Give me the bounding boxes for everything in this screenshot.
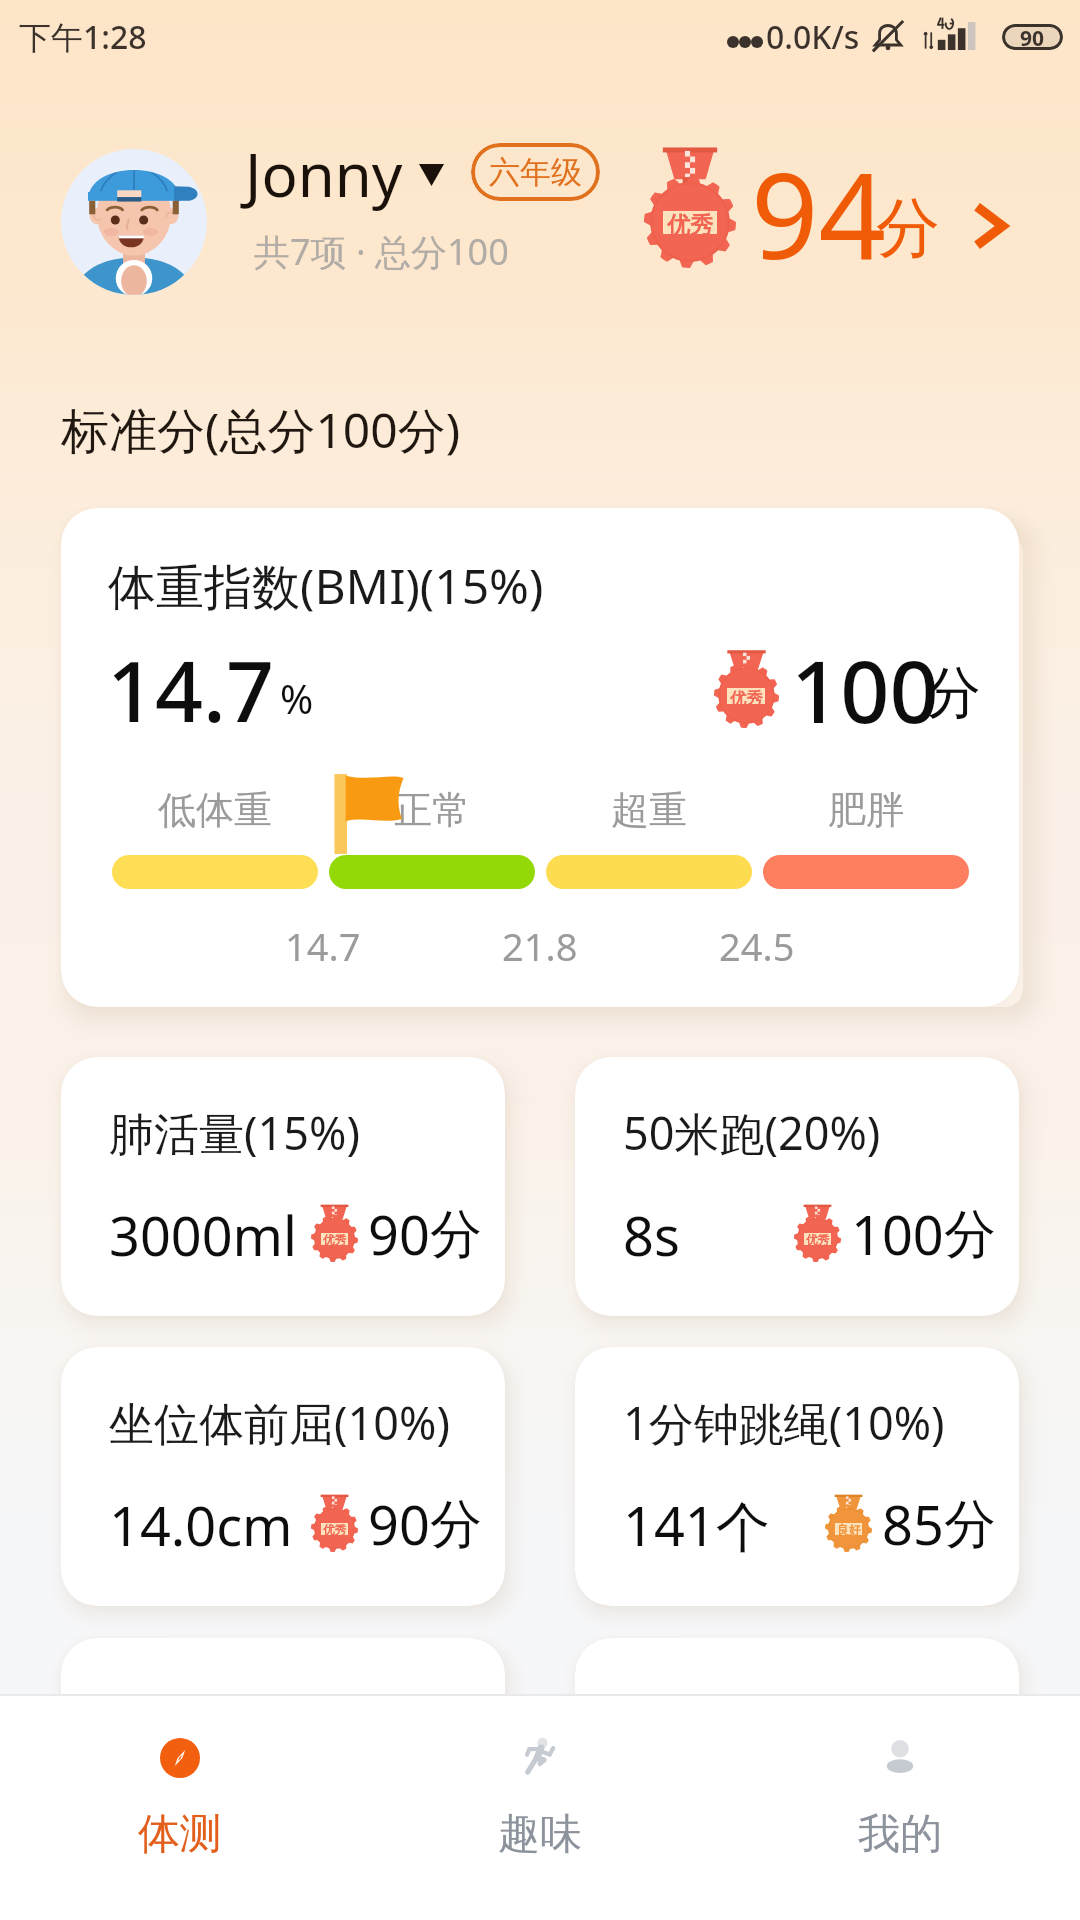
staticText: 分 xyxy=(944,1492,996,1558)
button[interactable]: 体测 xyxy=(0,1696,360,1920)
staticText: 50米跑(20%) xyxy=(623,1102,881,1163)
staticText: 良好 xyxy=(837,1523,861,1535)
button[interactable]: 体重指数(BMI)(15%) xyxy=(61,508,1019,1007)
staticText: 肥胖 xyxy=(828,786,904,834)
button[interactable]: 我的 xyxy=(720,1696,1080,1920)
staticText: 分 xyxy=(430,1202,482,1268)
staticText: Jonny xyxy=(245,133,403,215)
button[interactable]: 六年级 xyxy=(471,143,600,201)
staticText: 正常 xyxy=(394,786,470,834)
staticText: 14.7 xyxy=(285,920,361,972)
button[interactable]: 趣味 xyxy=(360,1696,720,1920)
staticText: 体测 xyxy=(138,1808,222,1861)
staticText: 标准分(总分100分) xyxy=(61,397,461,463)
staticText: 优秀 xyxy=(806,1233,830,1245)
staticText: 1分钟跳绳(10%) xyxy=(623,1392,945,1453)
staticText: 优秀 xyxy=(323,1523,347,1535)
staticText: 低体重 xyxy=(158,786,272,834)
button[interactable]: 总分 94 分 查看详情 xyxy=(630,130,1020,270)
staticText: 分 xyxy=(944,1202,996,1268)
staticText: 90 xyxy=(368,1487,430,1561)
staticText: % xyxy=(280,671,314,725)
staticText: 14.0cm xyxy=(109,1488,293,1562)
staticText: 8s xyxy=(623,1198,680,1272)
staticText: 0.0K/s xyxy=(766,15,860,59)
staticText: 优秀 xyxy=(730,688,763,704)
staticText: 85 xyxy=(882,1487,944,1561)
button[interactable]: 1分钟跳绳(10%) xyxy=(575,1347,1019,1606)
staticText: 90 xyxy=(1020,24,1045,50)
staticText: 94 xyxy=(751,133,886,273)
staticText: 3000ml xyxy=(109,1198,297,1272)
staticText: 共7项 · 总分100 xyxy=(254,227,509,276)
staticText: 141个 xyxy=(623,1488,770,1562)
staticText: 体重指数(BMI)(15%) xyxy=(108,553,544,619)
staticText: 趣味 xyxy=(498,1808,582,1861)
staticText: 14.7 xyxy=(107,632,274,746)
staticText: 21.8 xyxy=(502,920,578,972)
staticText: 坐位体前屈(10%) xyxy=(109,1392,450,1453)
button[interactable]: 50米跑(20%) xyxy=(575,1057,1019,1316)
staticText: 分 xyxy=(430,1492,482,1558)
staticText: 90 xyxy=(368,1197,430,1271)
staticText: 24.5 xyxy=(719,920,795,972)
button[interactable]: 用户头像 xyxy=(61,149,207,295)
button[interactable]: Jonny xyxy=(245,133,444,215)
button[interactable]: 肺活量(15%) xyxy=(61,1057,505,1316)
staticText: 超重 xyxy=(611,786,687,834)
staticText: 优秀 xyxy=(323,1233,347,1245)
staticText: 六年级 xyxy=(489,153,582,192)
staticText: 下午1:28 xyxy=(19,15,147,59)
staticText: 肺活量(15%) xyxy=(109,1102,360,1163)
staticText: 100 xyxy=(851,1197,944,1271)
staticText: 优秀 xyxy=(667,211,713,234)
staticText: 分 xyxy=(925,658,981,729)
staticText: 分 xyxy=(876,188,940,269)
staticText: 100 xyxy=(791,631,939,748)
button[interactable]: 坐位体前屈(10%) xyxy=(61,1347,505,1606)
staticText: 我的 xyxy=(858,1808,942,1861)
